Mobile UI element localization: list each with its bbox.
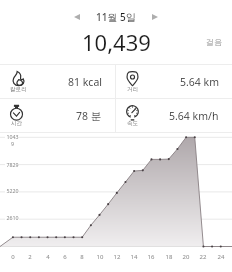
staticText: 5.64 km (180, 75, 219, 89)
button[interactable]: Next day (145, 7, 165, 27)
staticText: 칼로리 (10, 86, 27, 93)
staticText: 10,439 (82, 27, 151, 57)
staticText: 10 (92, 253, 108, 261)
staticText: 걸음 (206, 37, 222, 47)
staticText: 78 분 (76, 109, 102, 123)
staticText: 22 (195, 253, 211, 261)
staticText: 시간 (11, 120, 23, 127)
button[interactable]: 칼로리 (0, 65, 115, 98)
staticText: 6 (57, 253, 73, 261)
staticText: 2 (22, 253, 38, 261)
staticText: 5220 (6, 187, 19, 194)
staticText: 20 (178, 253, 194, 261)
staticText: 5.64 km/h (169, 109, 219, 123)
staticText: 11월 5일 (96, 10, 136, 24)
staticText: 16 (143, 253, 159, 261)
staticText: 14 (126, 253, 142, 261)
staticText: 12 (109, 253, 125, 261)
staticText: 0 (5, 253, 21, 261)
staticText: 2610 (6, 214, 19, 221)
button[interactable]: 거리 (116, 65, 232, 98)
staticText: 4 (40, 253, 56, 261)
staticText: 24 (213, 253, 229, 261)
staticText: 거리 (127, 86, 139, 93)
button[interactable]: 속도 (116, 99, 232, 132)
staticText: 7829 (6, 161, 19, 168)
staticText: 18 (161, 253, 177, 261)
staticText: 81 kcal (68, 75, 102, 89)
staticText: 10439 (6, 133, 19, 147)
button[interactable]: Previous day (67, 7, 87, 27)
button[interactable]: 시간 (0, 99, 115, 132)
staticText: 속도 (127, 120, 139, 127)
staticText: 8 (74, 253, 90, 261)
